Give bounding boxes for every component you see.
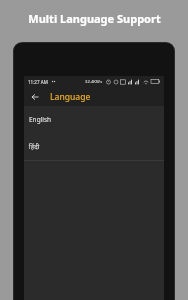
staticText: Multi Language Support [28, 11, 161, 26]
staticText: English [29, 115, 52, 124]
button[interactable]: Back [28, 90, 42, 104]
button[interactable]: English [24, 106, 164, 133]
staticText: Language [50, 91, 91, 103]
button[interactable]: हिंदी [24, 133, 164, 160]
staticText: हिंदी [29, 142, 40, 151]
staticText: 11:27 AM [28, 79, 48, 85]
staticText: 32.4KB/s [85, 79, 103, 85]
